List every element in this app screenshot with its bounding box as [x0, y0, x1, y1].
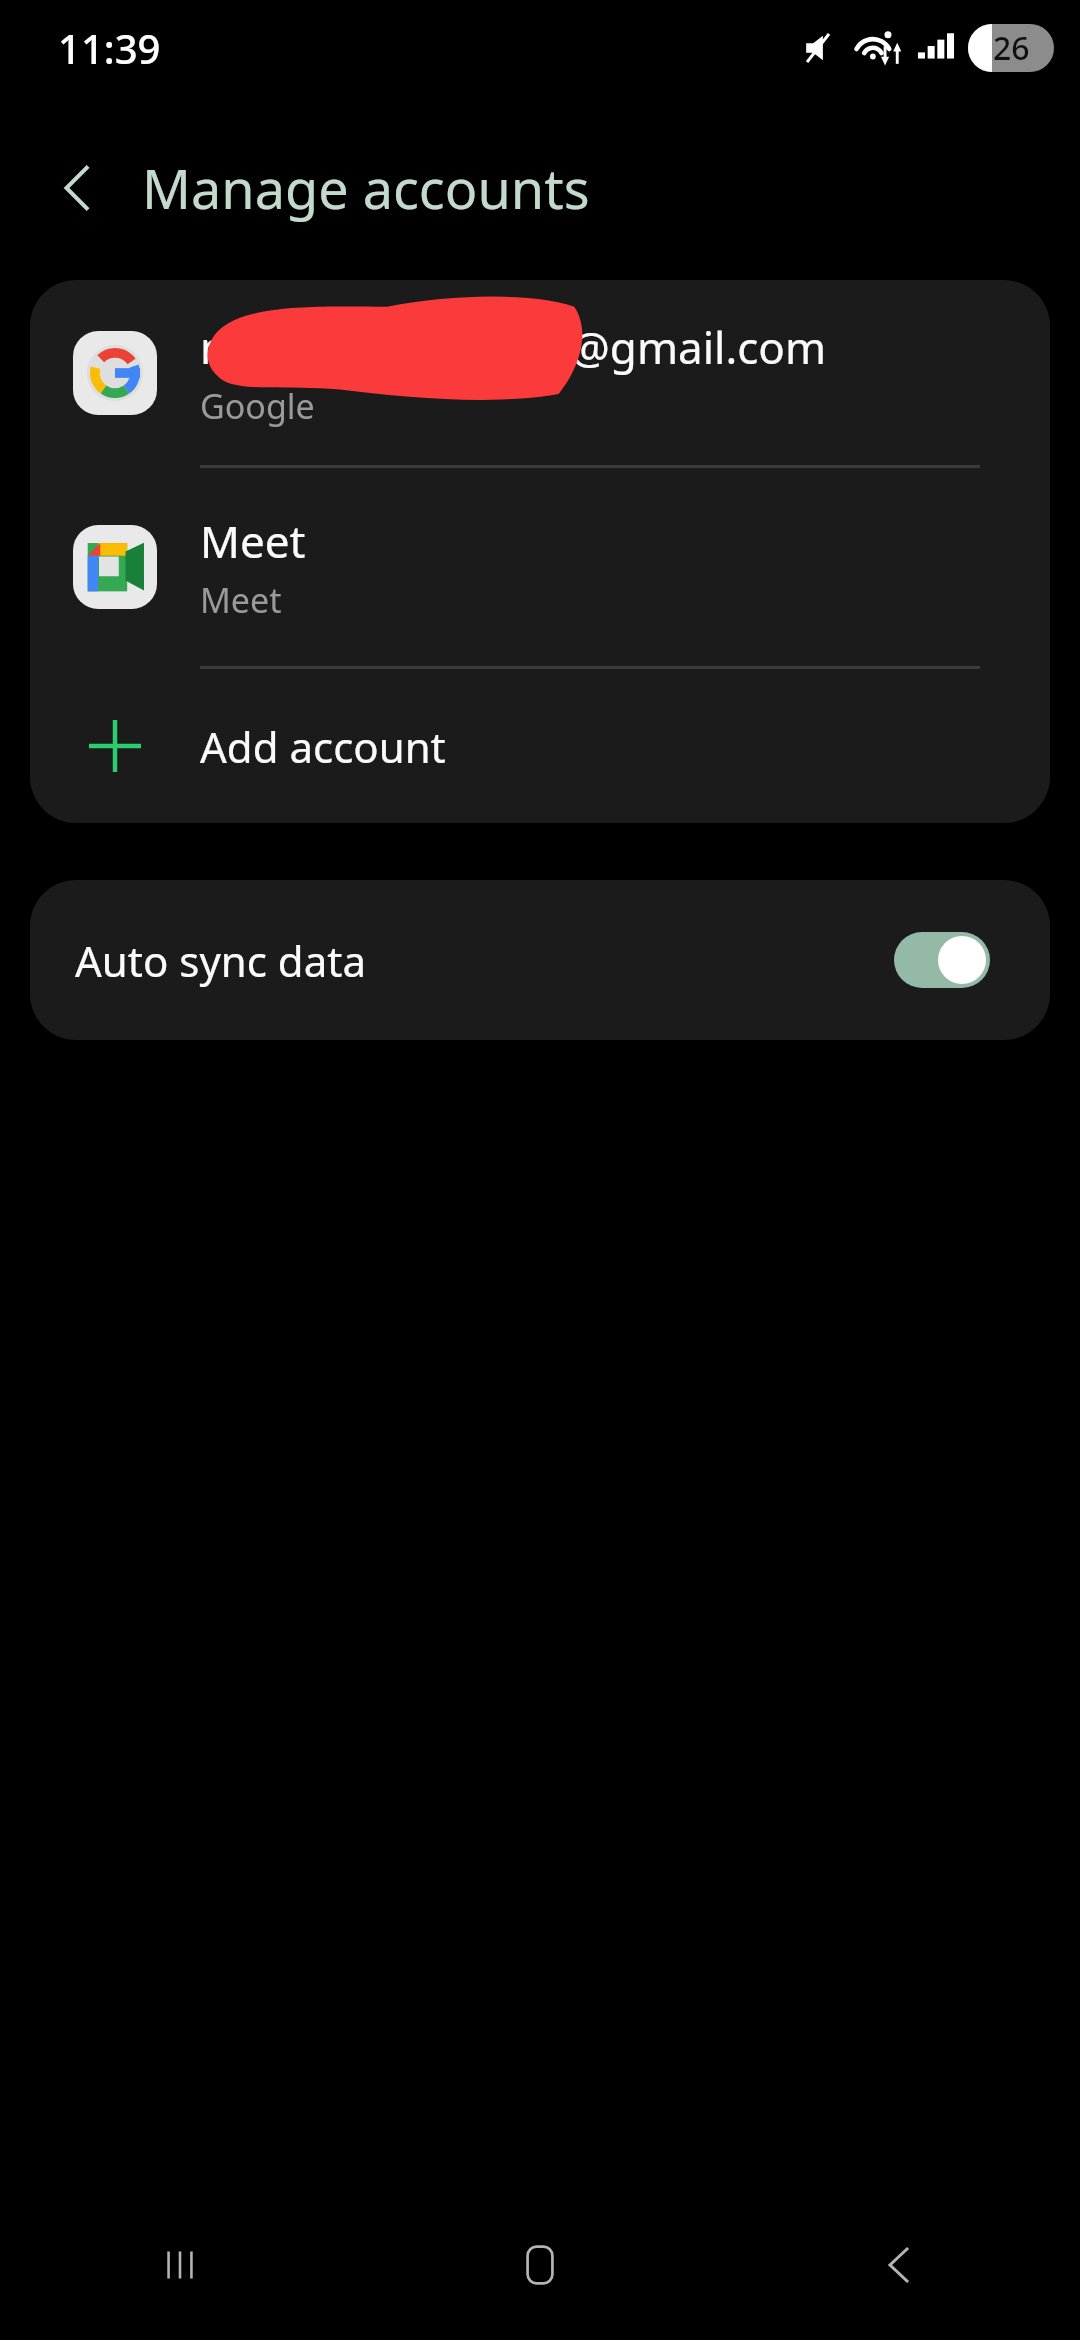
staticText: Add account	[200, 718, 446, 775]
staticText: Meet	[200, 511, 306, 571]
button[interactable]: Back	[720, 2190, 1080, 2340]
staticText: 26	[993, 26, 1030, 70]
button[interactable]: Home	[360, 2190, 720, 2340]
button[interactable]: Add account	[30, 669, 1050, 823]
staticText: 11:39	[58, 21, 161, 75]
button[interactable]: Auto sync data	[30, 880, 1050, 1040]
button[interactable]: Meet	[30, 468, 1050, 666]
staticText: Auto sync data	[75, 932, 366, 989]
staticText: Google	[200, 383, 315, 429]
button[interactable]: mmmmmmmmm@gmail.com	[30, 280, 1050, 465]
button[interactable]: Auto sync data	[894, 932, 990, 988]
staticText: Meet	[200, 577, 282, 623]
staticText: mmmmmmmmm@gmail.com	[200, 317, 827, 377]
staticText: Manage accounts	[142, 151, 590, 225]
button[interactable]: Back	[40, 150, 116, 226]
button[interactable]: Recent apps	[0, 2190, 360, 2340]
